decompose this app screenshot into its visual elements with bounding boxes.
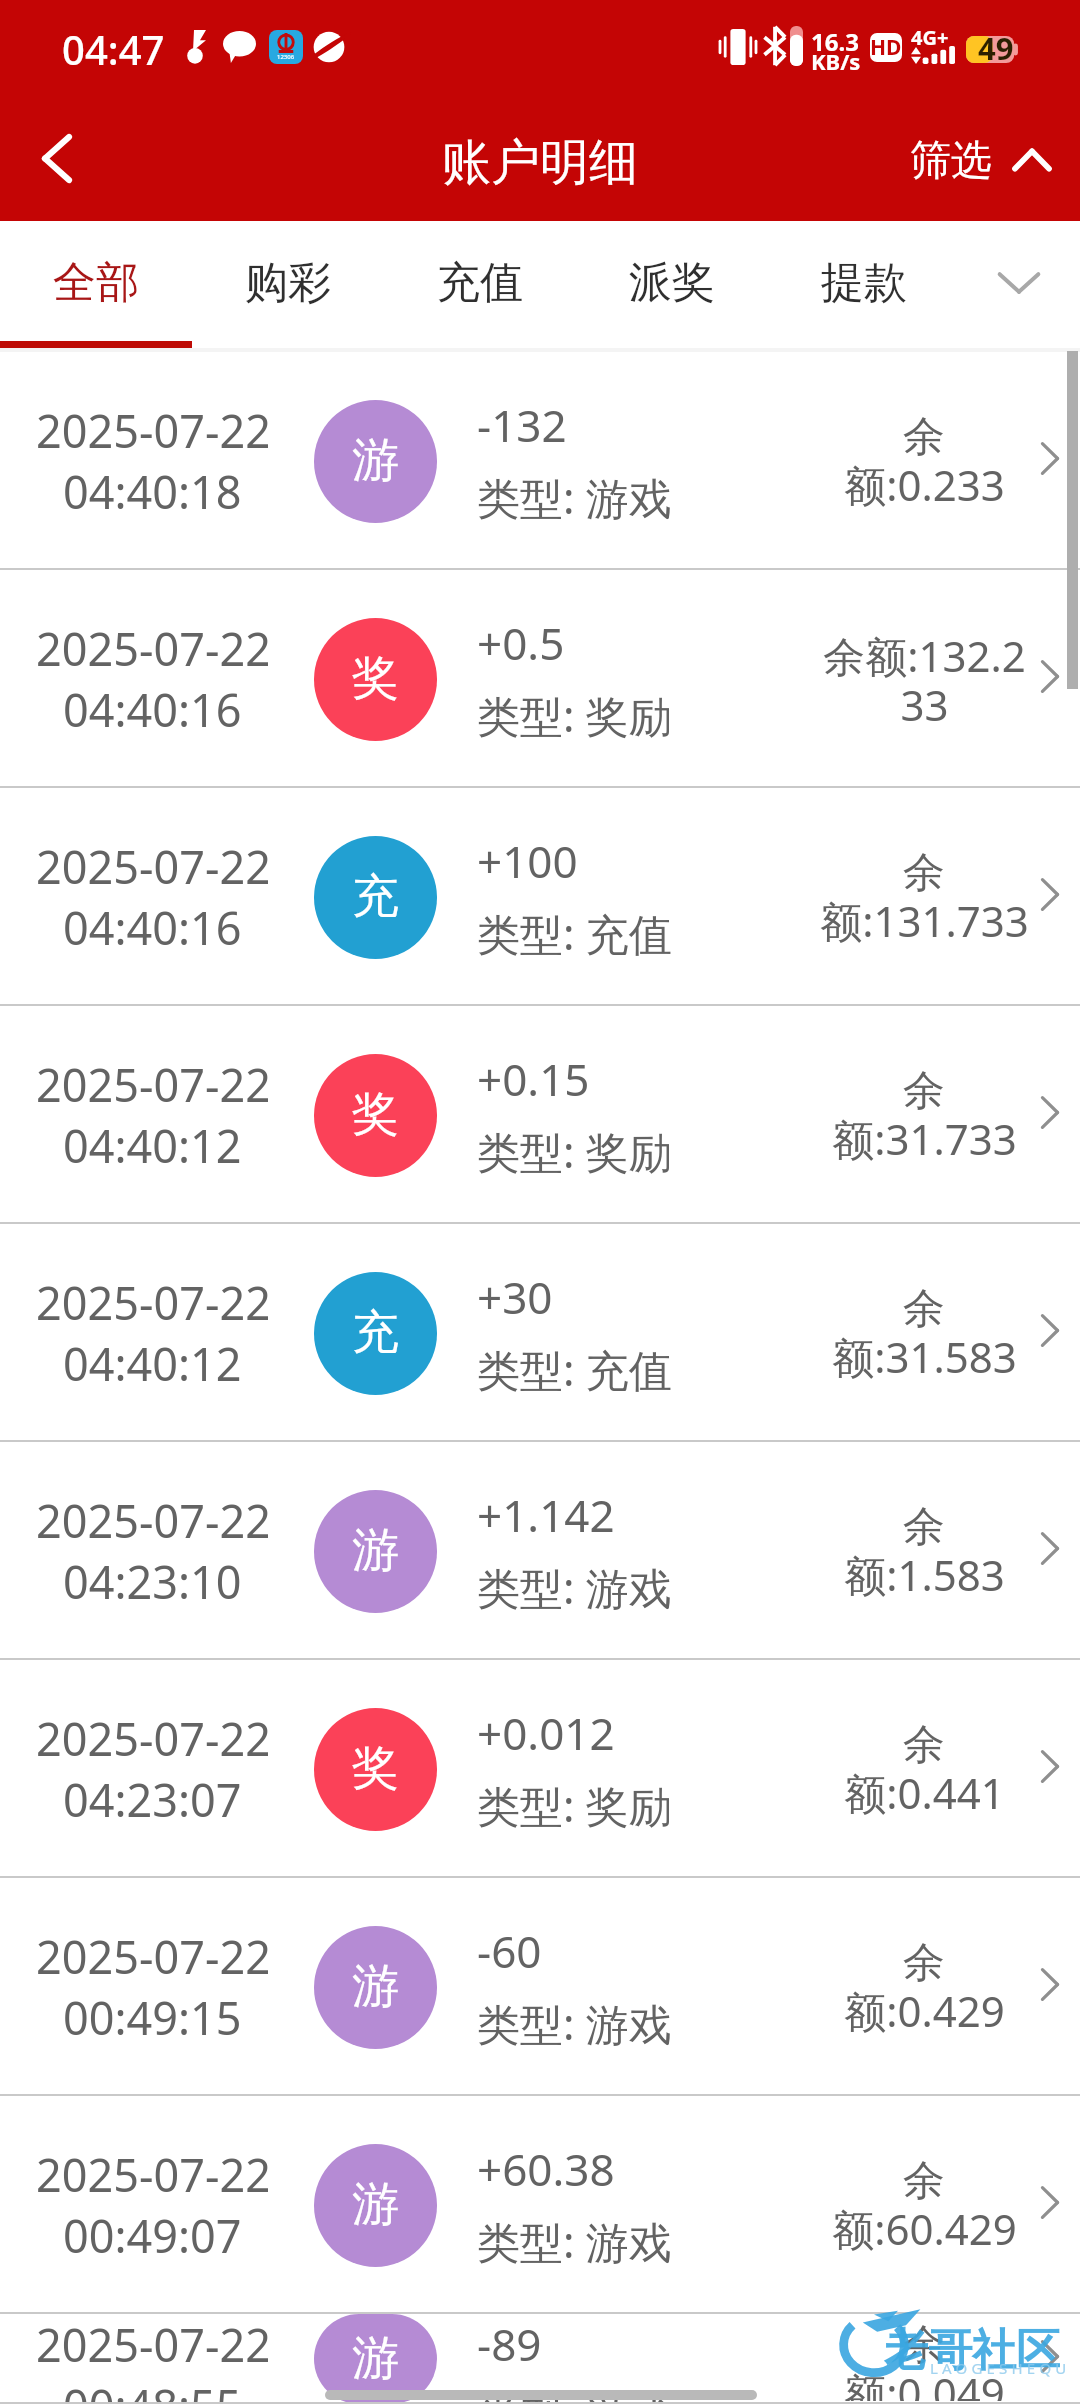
staticText: 33 — [900, 676, 949, 733]
staticText: 提款 — [821, 256, 907, 310]
staticText: 04:40:16 — [63, 679, 242, 740]
staticText: +1.142 — [477, 1485, 615, 1545]
staticText: 类型: 奖励 — [477, 686, 672, 745]
staticText: 类型: 游戏 — [477, 2212, 672, 2271]
staticText: 余 — [903, 1283, 945, 1336]
staticText: 游 — [352, 2329, 399, 2388]
staticText: 账户明细 — [442, 132, 638, 194]
button[interactable]: Back — [0, 96, 114, 221]
button[interactable]: 2025-07-22 — [0, 2096, 1080, 2314]
staticText: 2025-07-22 — [36, 1272, 268, 1333]
staticText: 04:23:07 — [63, 1769, 242, 1830]
staticText: 余 — [903, 2319, 945, 2372]
button[interactable]: 派奖 — [576, 221, 768, 348]
button[interactable]: 2025-07-22 — [0, 1006, 1080, 1224]
staticText: 老哥社区 — [884, 2323, 1060, 2378]
staticText: 余 — [903, 1937, 945, 1990]
staticText: 游 — [352, 2175, 399, 2234]
staticText: 04:23:10 — [63, 1551, 242, 1612]
button[interactable]: 2025-07-22 — [0, 1442, 1080, 1660]
staticText: -89 — [477, 2314, 542, 2374]
button[interactable]: 2025-07-22 — [0, 1224, 1080, 1442]
staticText: -60 — [477, 1921, 542, 1981]
button[interactable]: 全部 — [0, 221, 192, 348]
staticText: +0.012 — [477, 1703, 615, 1763]
staticText: 额:31.583 — [832, 1328, 1017, 1385]
button[interactable]: 提款 — [768, 221, 960, 348]
staticText: 00:49:15 — [63, 1987, 242, 2048]
staticText: 余 — [903, 1719, 945, 1772]
staticText: 额:60.429 — [832, 2200, 1017, 2257]
staticText: 余 — [903, 2155, 945, 2208]
staticText: 购彩 — [245, 256, 331, 310]
staticText: 余 — [903, 847, 945, 900]
staticText: 49 — [978, 27, 1014, 69]
staticText: 4G+ — [911, 24, 949, 51]
staticText: 12306 — [277, 53, 295, 61]
button[interactable]: 2025-07-22 — [0, 1878, 1080, 2096]
staticText: 奖 — [352, 1085, 399, 1144]
staticText: 2025-07-22 — [36, 1054, 268, 1115]
staticText: 余 — [903, 1501, 945, 1554]
button[interactable]: 2025-07-22 — [0, 788, 1080, 1006]
staticText: 奖 — [352, 1739, 399, 1798]
staticText: +100 — [477, 831, 578, 891]
staticText: 余 — [903, 411, 945, 464]
staticText: 额:0.049 — [844, 2364, 1005, 2401]
staticText: 04:40:12 — [63, 1333, 242, 1394]
staticText: 2025-07-22 — [36, 1708, 268, 1769]
staticText: 16.3 — [811, 25, 859, 58]
staticText: 额:0.429 — [844, 1982, 1005, 2039]
staticText: 04:47 — [62, 22, 165, 76]
staticText: 游 — [352, 1957, 399, 2016]
staticText: 游 — [352, 431, 399, 490]
staticText: 2025-07-22 — [36, 2314, 268, 2375]
staticText: 2025-07-22 — [36, 618, 268, 679]
staticText: 类型: 游戏 — [477, 1994, 672, 2053]
staticText: 派奖 — [629, 256, 715, 310]
staticText: 类型: 奖励 — [477, 1122, 672, 1181]
staticText: 额:31.733 — [832, 1110, 1017, 1167]
staticText: 类型: 游戏 — [477, 1558, 672, 1617]
staticText: 04:40:18 — [63, 461, 242, 522]
staticText: 04:40:12 — [63, 1115, 242, 1176]
staticText: 2025-07-22 — [36, 400, 268, 461]
staticText: -132 — [477, 395, 567, 455]
staticText: 2025-07-22 — [36, 1926, 268, 1987]
staticText: 类型: 游戏 — [477, 468, 672, 527]
button[interactable]: More filters — [960, 221, 1080, 348]
staticText: 充值 — [437, 256, 523, 310]
staticText: 2025-07-22 — [36, 1490, 268, 1551]
button[interactable]: 购彩 — [192, 221, 384, 348]
staticText: 余 — [903, 1065, 945, 1118]
staticText: 余额:132.2 — [823, 627, 1026, 684]
staticText: 2025-07-22 — [36, 2144, 268, 2205]
staticText: 游 — [352, 1521, 399, 1580]
button[interactable]: 2025-07-22 — [0, 570, 1080, 788]
staticText: 额:131.733 — [820, 892, 1029, 949]
button[interactable]: 2025-07-22 — [0, 352, 1080, 570]
staticText: +60.38 — [477, 2139, 615, 2199]
button[interactable]: 2025-07-22 — [0, 2314, 1080, 2404]
staticText: 类型: 游戏 — [477, 2387, 672, 2404]
staticText: 04:40:16 — [63, 897, 242, 958]
staticText: 00:48:55 — [63, 2375, 242, 2404]
staticText: KB/s — [811, 46, 861, 76]
staticText: LAOGESHEQU — [930, 2358, 1071, 2378]
staticText: 充 — [352, 867, 399, 926]
staticText: 额:0.441 — [844, 1764, 1005, 1821]
staticText: 额:0.233 — [844, 456, 1005, 513]
staticText: +30 — [477, 1267, 553, 1327]
staticText: 充 — [352, 1303, 399, 1362]
staticText: +0.5 — [477, 613, 565, 673]
button[interactable]: 充值 — [384, 221, 576, 348]
staticText: 00:49:07 — [63, 2205, 242, 2266]
button[interactable]: 2025-07-22 — [0, 1660, 1080, 1878]
staticText: 2025-07-22 — [36, 836, 268, 897]
staticText: 类型: 奖励 — [477, 1776, 672, 1835]
staticText: +0.15 — [477, 1049, 590, 1109]
staticText: 类型: 充值 — [477, 1340, 672, 1399]
staticText: 全部 — [53, 256, 139, 310]
staticText: 类型: 充值 — [477, 904, 672, 963]
button[interactable]: 筛选 — [910, 96, 1051, 221]
